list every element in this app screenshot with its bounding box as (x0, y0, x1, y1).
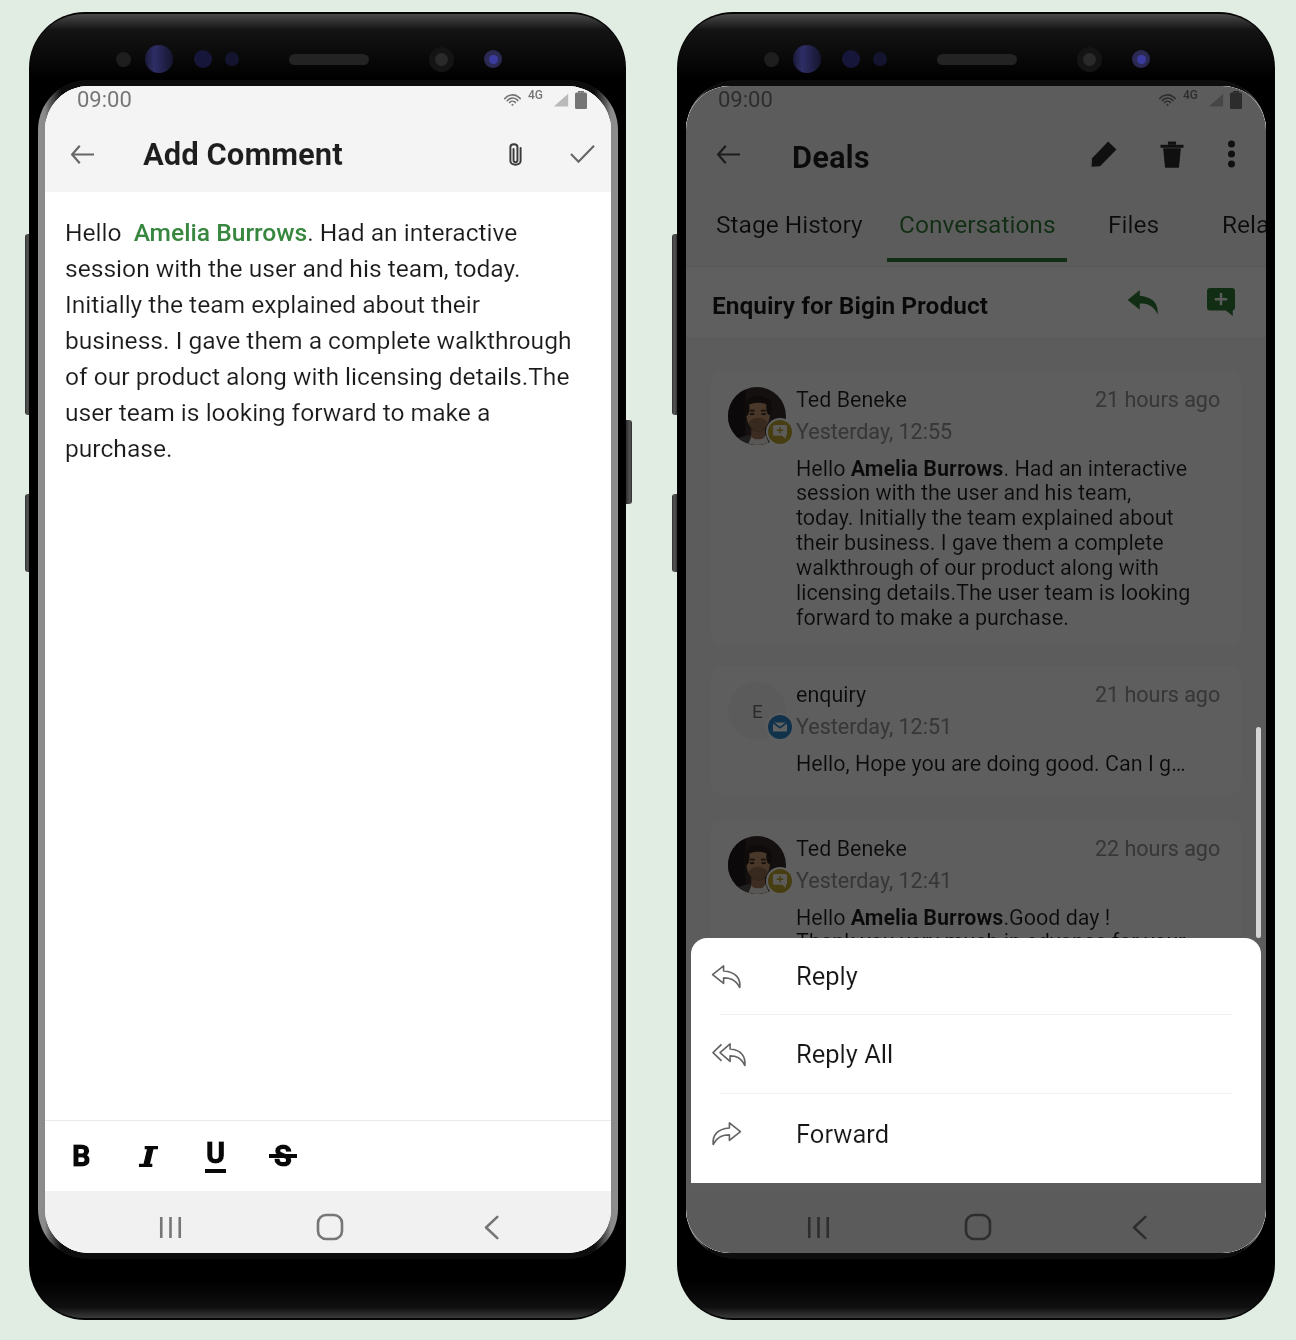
staticText: Hello Amelia Burrows. Had an interactive… (65, 218, 577, 463)
staticText: 21 hours ago (1095, 682, 1221, 707)
button[interactable]: Bold (48, 1123, 115, 1189)
staticText: Reply All (796, 1039, 894, 1069)
staticText: Ted Beneke (796, 836, 907, 861)
button[interactable]: New message (1198, 279, 1244, 325)
staticText: 09:00 (77, 87, 132, 113)
staticText: S (274, 1139, 292, 1173)
staticText: B (72, 1139, 91, 1173)
button[interactable]: Conversations (887, 198, 1067, 266)
button[interactable]: Done (558, 130, 606, 178)
staticText: Yesterday, 12:41 (796, 868, 953, 893)
button[interactable]: Home (300, 1197, 360, 1253)
button[interactable]: More options (1207, 130, 1255, 178)
staticText: Deals (792, 139, 870, 175)
staticText: Yesterday, 12:55 (796, 419, 953, 444)
button[interactable]: Back (58, 130, 106, 178)
staticText: Reply (796, 961, 858, 991)
button[interactable]: Stage History (699, 198, 879, 266)
button[interactable]: Home (948, 1197, 1008, 1253)
button[interactable]: Related (1203, 198, 1266, 266)
button[interactable]: Reply (691, 938, 1261, 1014)
staticText: Ted Beneke (796, 387, 907, 412)
button[interactable]: Back (704, 130, 752, 178)
staticText: 21 hours ago (1095, 387, 1221, 412)
staticText: Hello Amelia Burrows.Good day ! Thank yo… (796, 905, 1191, 980)
staticText: U (206, 1136, 226, 1170)
staticText: E (752, 700, 763, 722)
staticText: 4G (528, 88, 543, 102)
staticText: Yesterday, 12:51 (796, 714, 953, 739)
button[interactable]: Strikethrough (249, 1123, 316, 1189)
button[interactable]: Forward (691, 1094, 1261, 1173)
button[interactable]: Back (1109, 1197, 1169, 1253)
staticText: Hello, Hope you are doing good. Can I g… (796, 751, 1186, 776)
staticText: Hello Amelia Burrows. Had an interactive… (796, 456, 1191, 631)
button[interactable]: Reply All (691, 1015, 1261, 1093)
button[interactable]: Edit (1080, 130, 1128, 178)
button[interactable]: Italic (115, 1123, 182, 1189)
staticText: Add Comment (143, 136, 343, 172)
button[interactable]: Reply (1120, 279, 1166, 325)
staticText: 4G (1183, 88, 1198, 102)
staticText: Related (1222, 210, 1266, 239)
button[interactable]: Underline (182, 1123, 249, 1189)
staticText: Conversations (899, 210, 1056, 239)
staticText: enquiry (796, 682, 867, 707)
button[interactable]: Recents (788, 1197, 848, 1253)
button[interactable]: E (711, 666, 1241, 795)
staticText: Enquiry for Bigin Product (712, 291, 989, 320)
button[interactable]: Ted Beneke (711, 371, 1241, 645)
button[interactable]: Attach (491, 130, 539, 178)
staticText: 09:00 (718, 87, 773, 113)
staticText: Forward (796, 1119, 890, 1149)
button[interactable]: Delete (1148, 130, 1196, 178)
button[interactable]: Files (1084, 198, 1184, 266)
staticText: 22 hours ago (1095, 836, 1221, 861)
button[interactable]: Recents (140, 1197, 200, 1253)
button[interactable]: Back (461, 1197, 521, 1253)
staticText: Stage History (716, 210, 863, 239)
staticText: Files (1108, 210, 1160, 239)
button[interactable]: Enquiry for Bigin Product (686, 267, 1266, 337)
button[interactable]: Ted Beneke (711, 820, 1241, 994)
